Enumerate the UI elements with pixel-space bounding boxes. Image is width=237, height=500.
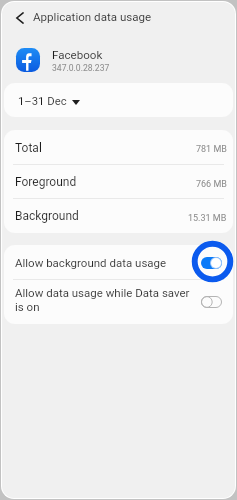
button[interactable]: Back xyxy=(2,2,235,31)
button[interactable]: 1–31 Dec xyxy=(4,83,233,117)
staticText: Facebook xyxy=(52,48,103,62)
staticText: Allow background data usage xyxy=(15,256,167,269)
staticText: Foreground xyxy=(15,175,77,189)
staticText: 766 MB xyxy=(196,179,227,190)
button[interactable]: Total xyxy=(4,130,233,165)
staticText: Application data usage xyxy=(33,10,152,24)
staticText: 781 MB xyxy=(196,144,227,155)
button[interactable]: Allow data usage while Data saver is on xyxy=(4,280,233,324)
staticText: 347.0.0.28.237 xyxy=(52,63,110,73)
staticText: 15.31 MB xyxy=(188,213,227,224)
staticText: Allow data usage while Data saver is on xyxy=(15,286,197,314)
staticText: Total xyxy=(15,141,42,155)
staticText: 1–31 Dec xyxy=(18,95,67,108)
staticText: Background xyxy=(15,209,79,223)
button[interactable]: Allow background data usage xyxy=(4,245,233,280)
button[interactable]: Foreground xyxy=(4,165,233,199)
button[interactable]: Background xyxy=(4,199,233,233)
